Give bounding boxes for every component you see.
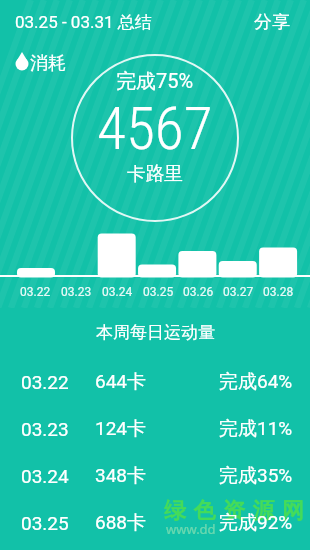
staticText: 本周每日运动量 (96, 322, 215, 343)
staticText: 03.26 (183, 285, 214, 299)
staticText: 644卡 (95, 370, 147, 394)
staticText: 03.25 (21, 512, 69, 534)
staticText: 03.24 (21, 465, 69, 487)
button[interactable]: 消耗 (30, 52, 66, 75)
staticText: 124卡 (95, 417, 147, 441)
staticText: www.dd (166, 520, 216, 538)
staticText: 4567 (97, 94, 213, 164)
staticText: 绿色资源网 (164, 497, 310, 525)
staticText: 完成11% (219, 417, 293, 441)
button[interactable]: 03.25 (0, 499, 310, 546)
staticText: 03.25 (143, 285, 174, 299)
staticText: 卡路里 (127, 162, 183, 185)
staticText: 03.23 (21, 418, 69, 440)
staticText: 03.24 (102, 285, 133, 299)
staticText: 03.23 (61, 285, 92, 299)
button[interactable]: 03.23 (0, 405, 310, 452)
staticText: 03.28 (263, 285, 294, 299)
staticText: 688卡 (95, 511, 147, 535)
staticText: 03.22 (20, 285, 51, 299)
staticText: 完成35% (219, 464, 293, 488)
button[interactable]: 03.24 (0, 452, 310, 499)
button[interactable]: 03.25 - 03.31 总结 (15, 12, 152, 33)
staticText: 完成64% (219, 370, 293, 394)
staticText: 348卡 (95, 464, 147, 488)
staticText: 03.27 (223, 285, 254, 299)
staticText: 完成92% (219, 511, 293, 535)
button[interactable]: 03.22 (0, 358, 310, 405)
staticText: 完成75% (116, 69, 194, 94)
staticText: 03.22 (21, 371, 69, 393)
button[interactable]: 分享 (254, 11, 290, 34)
